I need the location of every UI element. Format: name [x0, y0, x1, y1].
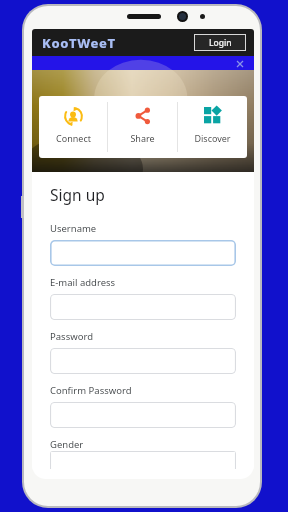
button[interactable]: Share	[108, 96, 177, 158]
button[interactable]: Discover	[178, 96, 247, 158]
button[interactable]: Password	[50, 348, 236, 374]
staticText: Discover	[194, 132, 231, 144]
staticText: Connect	[56, 132, 91, 144]
staticText: Sign up	[50, 184, 105, 205]
staticText: Share	[130, 132, 155, 144]
staticText: E-mail address	[50, 276, 116, 289]
button[interactable]: Close ad	[234, 58, 245, 69]
staticText: Login	[209, 37, 232, 49]
staticText: KooTWeeT	[42, 34, 116, 52]
button[interactable]	[50, 451, 236, 469]
staticText: Gender	[50, 438, 84, 451]
staticText: Username	[50, 222, 97, 235]
staticText: Password	[50, 330, 93, 343]
staticText: Confirm Password	[50, 384, 132, 397]
button[interactable]: Confirm Password	[50, 402, 236, 428]
button[interactable]: Username	[50, 240, 236, 266]
button[interactable]: E-mail address	[50, 294, 236, 320]
button[interactable]: Login	[194, 34, 246, 51]
button[interactable]: Connect	[39, 96, 107, 158]
